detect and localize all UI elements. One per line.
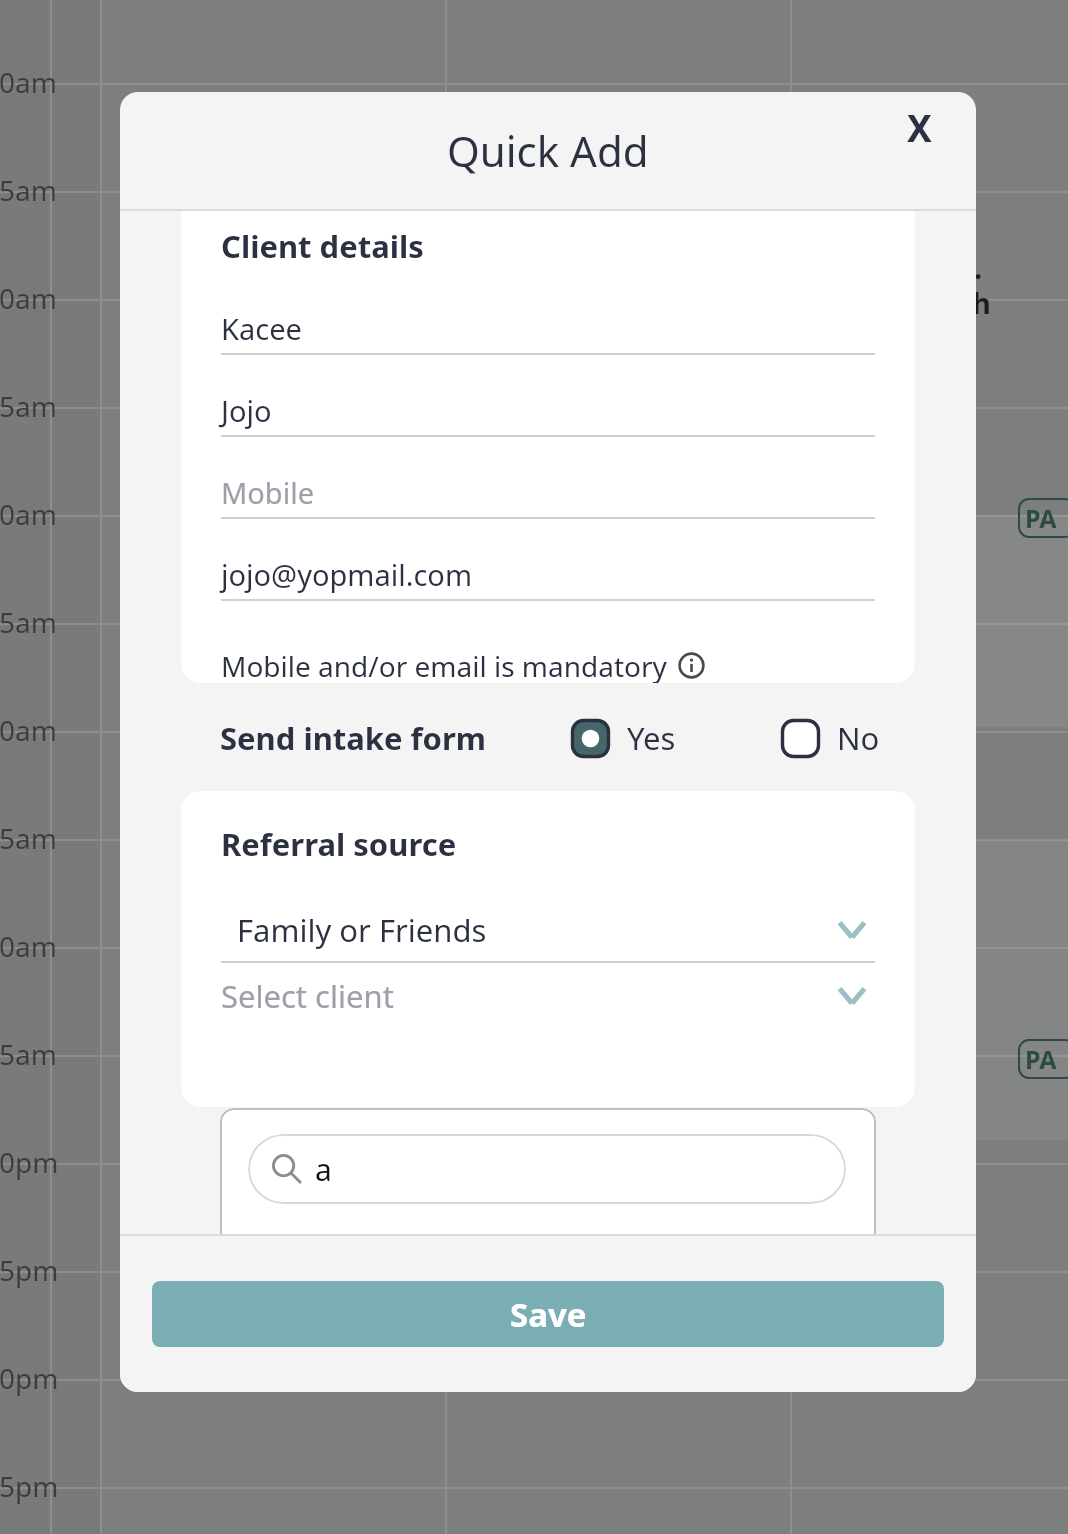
staticText: Mobile and/or email is mandatory	[221, 647, 667, 683]
button[interactable]: Family or Friends	[221, 899, 875, 963]
staticText: 45pm	[0, 1467, 59, 1505]
staticText: 00am	[0, 711, 57, 749]
staticText: jojo@yopmail.com	[221, 555, 472, 594]
staticText: 30am	[0, 63, 57, 101]
button[interactable]: Select client	[221, 965, 875, 1027]
staticText: 00am	[0, 279, 57, 317]
other: Search	[270, 1152, 304, 1186]
staticText: Family or Friends	[237, 909, 487, 951]
staticText: Save	[510, 1292, 587, 1337]
staticText: a	[315, 1149, 332, 1190]
staticText: 15pm	[0, 1251, 59, 1289]
staticText: 30am	[0, 495, 57, 533]
button[interactable]: No	[780, 717, 880, 759]
staticText: X	[907, 102, 932, 152]
staticText: Kacee	[221, 309, 302, 348]
staticText: 45am	[0, 603, 57, 641]
staticText: Client details	[221, 225, 424, 267]
staticText: 15am	[0, 819, 57, 857]
staticText: 45am	[0, 1035, 57, 1073]
staticText: Yes	[627, 717, 676, 759]
staticText: No	[837, 717, 880, 759]
other: Expand	[829, 973, 875, 1019]
staticText: Jojo	[221, 391, 272, 430]
staticText: Referral source	[221, 823, 457, 865]
button[interactable]: Jojo	[221, 385, 875, 467]
staticText: 30pm	[0, 1359, 59, 1397]
button[interactable]: Mobile	[221, 467, 875, 549]
button[interactable]: Close	[888, 96, 950, 158]
staticText: Quick Add	[447, 122, 649, 179]
staticText: 30am	[0, 927, 57, 965]
button[interactable]: Kacee	[221, 303, 875, 385]
button[interactable]: Yes	[570, 717, 676, 759]
staticText: 15am	[0, 387, 57, 425]
staticText: 00pm	[0, 1143, 59, 1181]
staticText: PA	[1025, 1042, 1057, 1076]
other: Expand	[829, 907, 875, 953]
staticText: h	[972, 283, 991, 322]
staticText: Mobile	[221, 473, 315, 512]
button[interactable]: jojo@yopmail.com	[221, 549, 875, 631]
button[interactable]: Search	[248, 1134, 846, 1204]
staticText: Send intake form	[220, 717, 487, 759]
staticText: Select client	[221, 975, 394, 1017]
staticText: PA	[1025, 501, 1057, 535]
staticText: .	[974, 248, 983, 287]
button[interactable]: Save	[152, 1281, 944, 1347]
staticText: 45am	[0, 171, 57, 209]
